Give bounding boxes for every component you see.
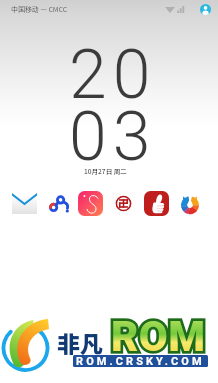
staticText: 03 bbox=[69, 97, 157, 177]
staticText: ROM bbox=[111, 312, 206, 361]
staticText: 非凡 bbox=[57, 326, 103, 359]
staticText: ROM.CRSKY.COM bbox=[76, 355, 205, 367]
button[interactable]: ICBC bbox=[111, 191, 136, 216]
staticText: 20 bbox=[69, 35, 157, 115]
button[interactable]: Mail bbox=[12, 191, 37, 216]
button[interactable]: Baidu Netdisk bbox=[45, 191, 70, 216]
staticText: 非凡 bbox=[57, 326, 103, 359]
button[interactable]: Notes bbox=[78, 191, 103, 216]
button[interactable]: Thumbs up bbox=[144, 191, 169, 216]
staticText: ROM bbox=[111, 312, 206, 361]
staticText: 10月27日 周二 bbox=[84, 166, 127, 176]
staticText: 中国移动 — CMCC bbox=[11, 4, 68, 14]
button[interactable]: Account bbox=[200, 4, 211, 15]
button[interactable]: Browser bbox=[177, 191, 202, 216]
